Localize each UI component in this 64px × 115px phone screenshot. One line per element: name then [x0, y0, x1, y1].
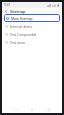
staticText: Main Sitemap	[11, 16, 33, 20]
button[interactable]: Recents	[46, 107, 52, 113]
button[interactable]: Main Sitemap	[4, 14, 60, 22]
staticText: 9:41	[4, 3, 11, 7]
staticText: Internal demo	[10, 24, 33, 28]
button[interactable]: Back	[13, 107, 19, 113]
staticText: Sitemap	[10, 9, 26, 14]
staticText: Test astro	[10, 40, 25, 44]
button[interactable]: Back	[4, 9, 9, 14]
button[interactable]: Home	[29, 107, 35, 113]
button[interactable]: Internal demo	[2, 22, 62, 30]
button[interactable]: Test Composable	[2, 30, 62, 38]
button[interactable]: Test astro	[2, 38, 62, 46]
staticText: Test Composable	[10, 32, 37, 36]
